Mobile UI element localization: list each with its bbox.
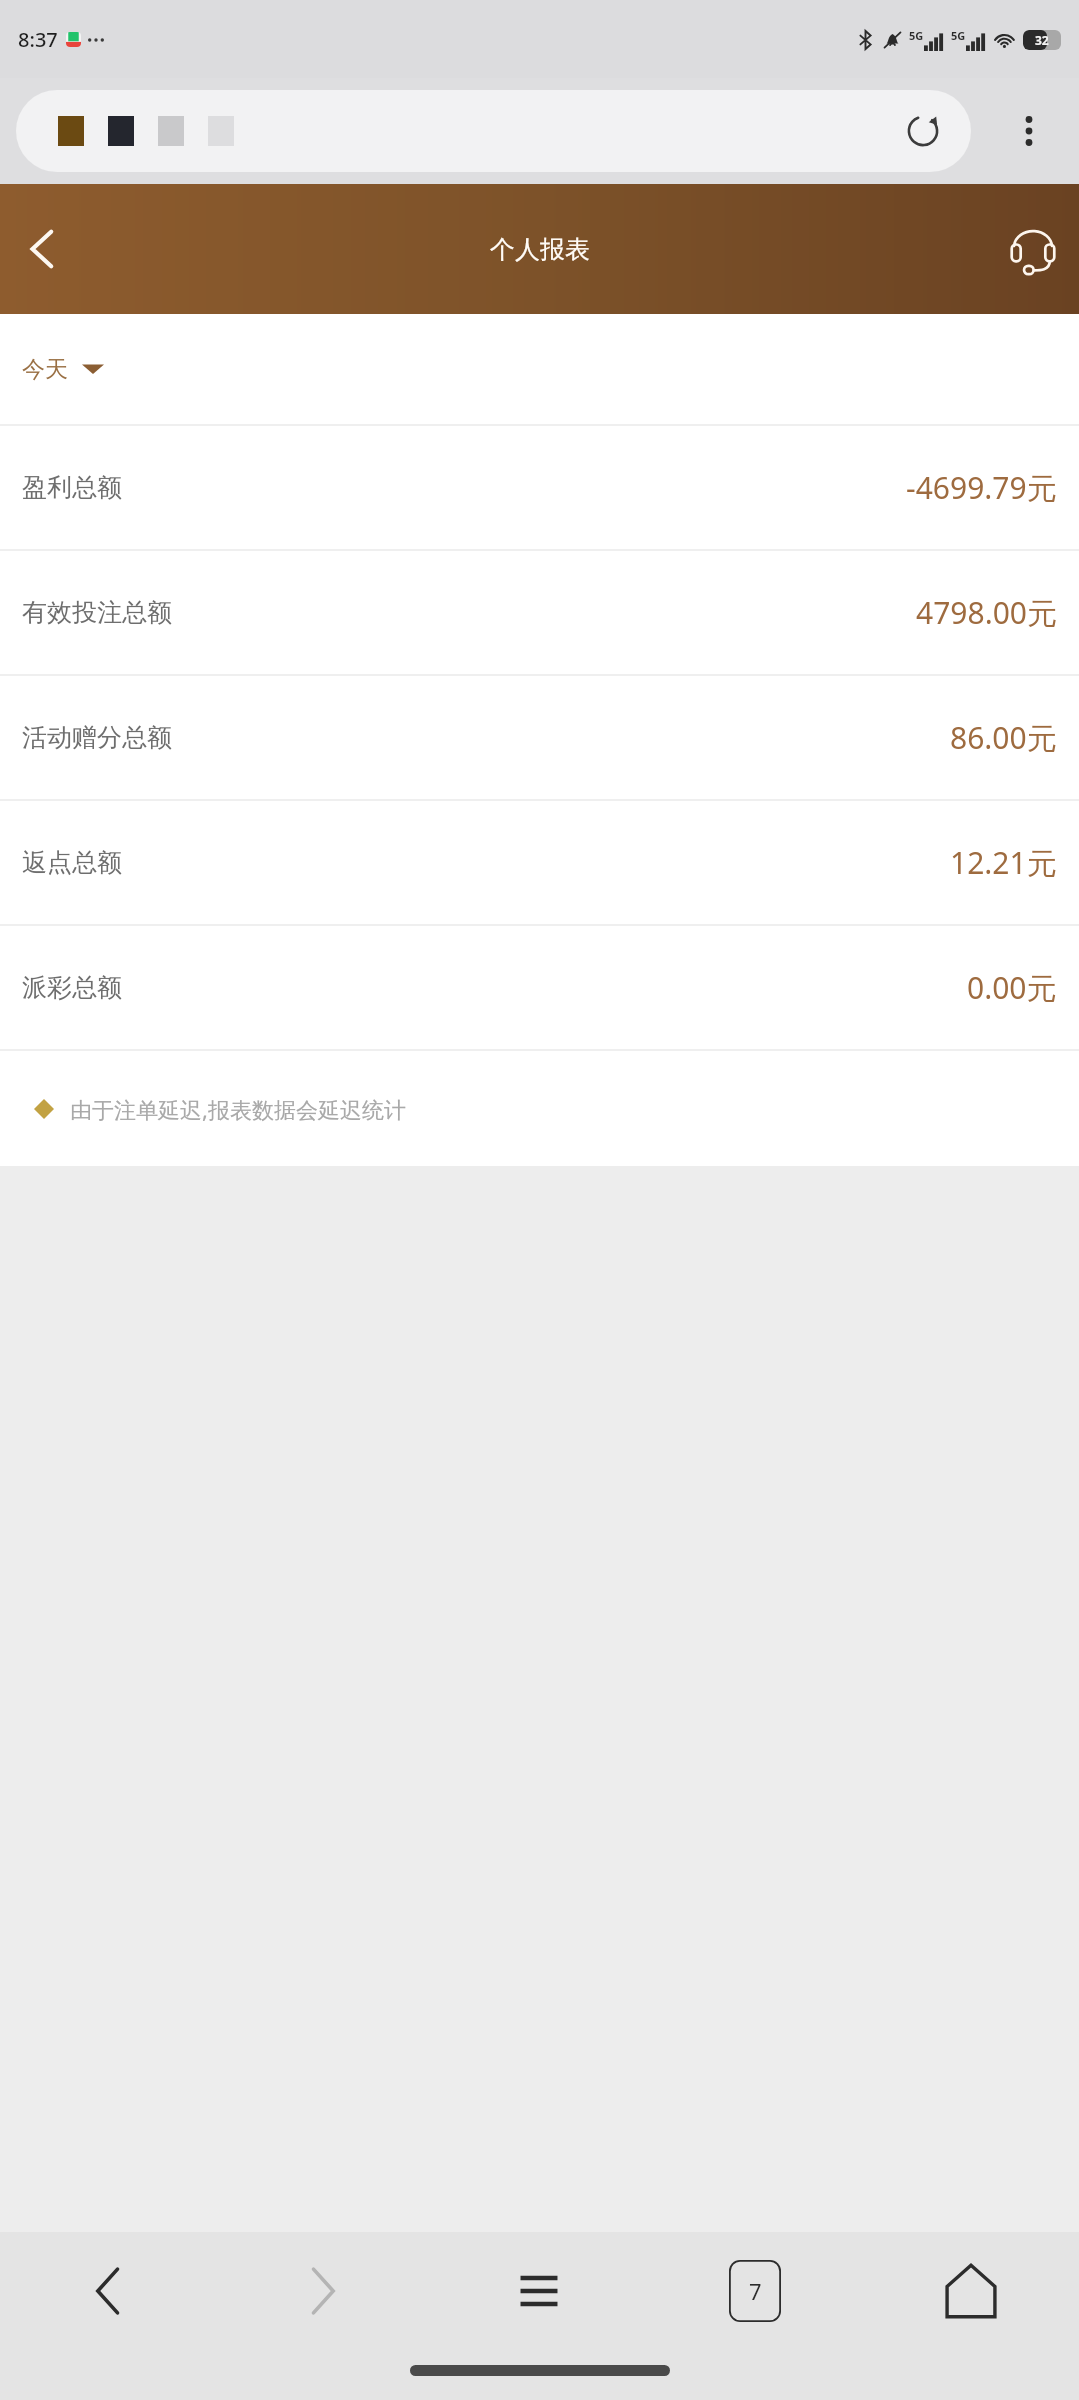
staticText: 由于注单延迟,报表数据会延迟统计 <box>70 1094 406 1124</box>
staticText: 派彩总额 <box>22 972 122 1003</box>
button[interactable]: Menu <box>431 2232 647 2350</box>
button[interactable]: 有效投注总额 <box>0 551 1079 674</box>
staticText: 个人报表 <box>490 234 590 265</box>
button[interactable]: 今天 <box>0 314 1079 424</box>
button[interactable]: Customer service <box>1005 221 1061 277</box>
button[interactable]: Home <box>863 2232 1079 2350</box>
staticText: 有效投注总额 <box>22 597 172 628</box>
staticText: 86.00元 <box>950 717 1057 758</box>
button[interactable]: Tabs <box>647 2232 863 2350</box>
button[interactable]: 派彩总额 <box>0 926 1079 1049</box>
staticText: 今天 <box>22 355 68 384</box>
button[interactable]: 活动赠分总额 <box>0 676 1079 799</box>
button[interactable]: Back <box>8 213 80 285</box>
button[interactable]: More options <box>1005 107 1053 155</box>
staticText: 7 <box>749 2276 762 2306</box>
staticText: 4798.00元 <box>916 592 1057 633</box>
button[interactable]: Reload <box>901 109 945 153</box>
staticText: -4699.79元 <box>906 467 1057 508</box>
staticText: 5G <box>909 28 924 43</box>
staticText: 12.21元 <box>950 842 1057 883</box>
button[interactable]: 盈利总额 <box>0 426 1079 549</box>
button[interactable]: 返点总额 <box>0 801 1079 924</box>
staticText: 返点总额 <box>22 847 122 878</box>
staticText: 5G <box>951 28 966 43</box>
staticText: 活动赠分总额 <box>22 722 172 753</box>
button[interactable]: Back <box>0 2232 215 2350</box>
button[interactable]: Forward <box>215 2232 431 2350</box>
button[interactable]: Reload <box>16 90 971 172</box>
staticText: 32 <box>1035 32 1049 48</box>
staticText: 8:37 <box>18 26 58 53</box>
staticText: 盈利总额 <box>22 472 122 503</box>
staticText: 0.00元 <box>967 967 1057 1008</box>
